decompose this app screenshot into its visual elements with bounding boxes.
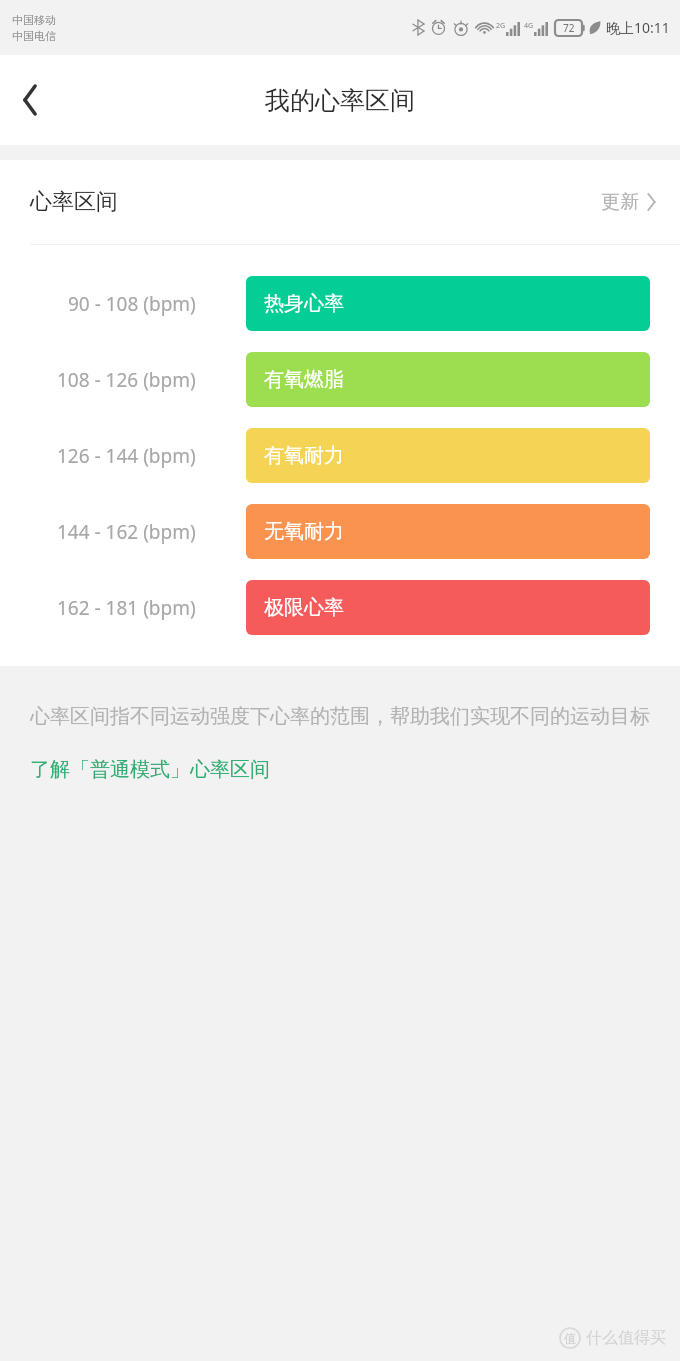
staticText: 更新 bbox=[601, 190, 639, 214]
staticText: 有氧燃脂 bbox=[264, 367, 344, 392]
staticText: 126 - 144 (bpm) bbox=[57, 443, 196, 469]
staticText: 中国移动 bbox=[12, 13, 56, 27]
button[interactable]: 90 - 108 (bpm) bbox=[0, 276, 680, 331]
staticText: 心率区间指不同运动强度下心率的范围，帮助我们实现不同的运动目标 bbox=[30, 704, 650, 729]
staticText: 中国电信 bbox=[12, 29, 56, 43]
staticText: 162 - 181 (bpm) bbox=[57, 595, 196, 621]
button[interactable]: 心率区间 bbox=[0, 160, 680, 244]
staticText: 有氧耐力 bbox=[264, 443, 344, 468]
staticText: 72 bbox=[563, 21, 575, 35]
staticText: 144 - 162 (bpm) bbox=[57, 519, 196, 545]
staticText: 什么值得买 bbox=[586, 1328, 666, 1348]
staticText: 晚上10:11 bbox=[606, 18, 670, 37]
staticText: 我的心率区间 bbox=[265, 85, 415, 116]
staticText: 热身心率 bbox=[264, 291, 344, 316]
staticText: 了解「普通模式」心率区间 bbox=[30, 757, 270, 782]
staticText: 2G bbox=[496, 21, 506, 31]
staticText: 值 bbox=[564, 1331, 576, 1346]
button[interactable]: 162 - 181 (bpm) bbox=[0, 580, 680, 635]
button[interactable]: 108 - 126 (bpm) bbox=[0, 352, 680, 407]
staticText: 极限心率 bbox=[264, 595, 344, 620]
button[interactable]: 了解「普通模式」心率区间 bbox=[30, 757, 270, 782]
button[interactable]: 126 - 144 (bpm) bbox=[0, 428, 680, 483]
staticText: 心率区间 bbox=[30, 188, 118, 216]
button[interactable]: Back bbox=[0, 70, 60, 130]
staticText: 90 - 108 (bpm) bbox=[68, 291, 196, 317]
staticText: 无氧耐力 bbox=[264, 519, 344, 544]
button[interactable]: 144 - 162 (bpm) bbox=[0, 504, 680, 559]
staticText: 108 - 126 (bpm) bbox=[57, 367, 196, 393]
staticText: 4G bbox=[524, 21, 534, 31]
